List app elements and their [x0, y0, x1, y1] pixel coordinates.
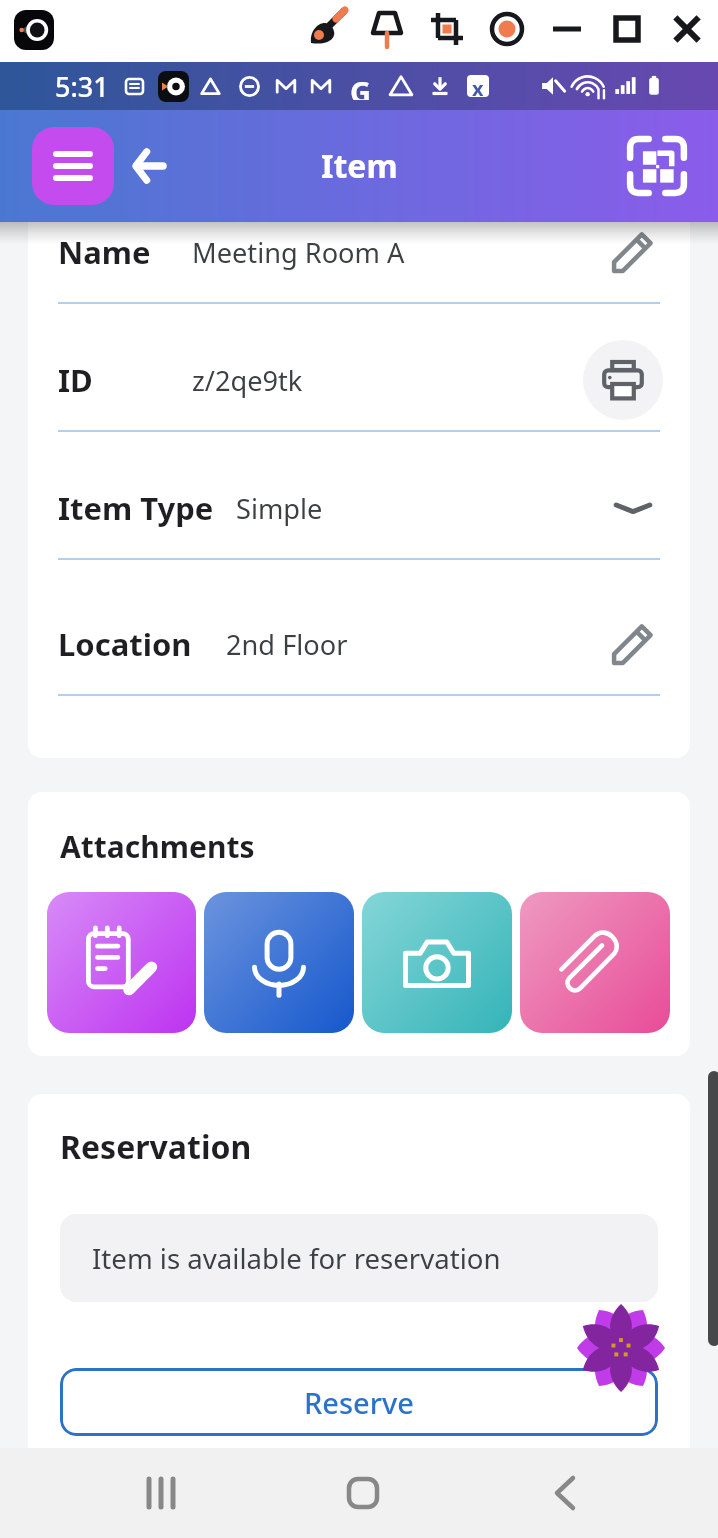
staticText: Name: [58, 231, 151, 273]
button[interactable]: App icon: [14, 10, 54, 50]
staticText: 5:31: [55, 68, 109, 105]
button[interactable]: Pin: [357, 0, 417, 59]
staticText: Item Type: [58, 487, 214, 529]
button[interactable]: Minimize: [537, 0, 597, 59]
button[interactable]: Add note: [47, 892, 196, 1033]
button[interactable]: Edit Location: [603, 614, 663, 674]
staticText: Meeting Room A: [192, 234, 405, 271]
button[interactable]: Record: [477, 0, 537, 59]
staticText: Location: [58, 623, 192, 665]
staticText: Item is available for reservation: [92, 1239, 501, 1277]
button[interactable]: Maximize: [597, 0, 657, 59]
button[interactable]: Back: [518, 1448, 612, 1538]
button[interactable]: Recents: [114, 1448, 208, 1538]
staticText: Reservation: [60, 1125, 252, 1169]
staticText: Reserve: [304, 1383, 414, 1422]
button[interactable]: Menu: [32, 127, 114, 205]
button[interactable]: Take photo: [362, 892, 512, 1033]
button[interactable]: Draw: [297, 0, 357, 59]
button[interactable]: Print label: [583, 340, 663, 420]
button[interactable]: Crop: [417, 0, 477, 59]
button[interactable]: Record audio: [204, 892, 354, 1033]
staticText: Item: [321, 144, 398, 188]
button[interactable]: Home: [316, 1448, 410, 1538]
button[interactable]: Back: [109, 123, 195, 209]
button[interactable]: Edit Name: [603, 222, 663, 282]
staticText: Simple: [236, 490, 323, 527]
staticText: z/2qe9tk: [192, 362, 303, 399]
button[interactable]: Change Item Type: [603, 478, 663, 538]
button[interactable]: Attach file: [520, 892, 670, 1033]
button[interactable]: Close: [657, 0, 717, 59]
staticText: x: [472, 75, 484, 97]
staticText: ID: [58, 359, 93, 401]
staticText: 2nd Floor: [226, 626, 348, 663]
button[interactable]: Scan code: [617, 126, 697, 206]
staticText: Attachments: [60, 826, 255, 867]
button[interactable]: Reserve: [60, 1368, 658, 1436]
staticText: G: [350, 72, 371, 100]
